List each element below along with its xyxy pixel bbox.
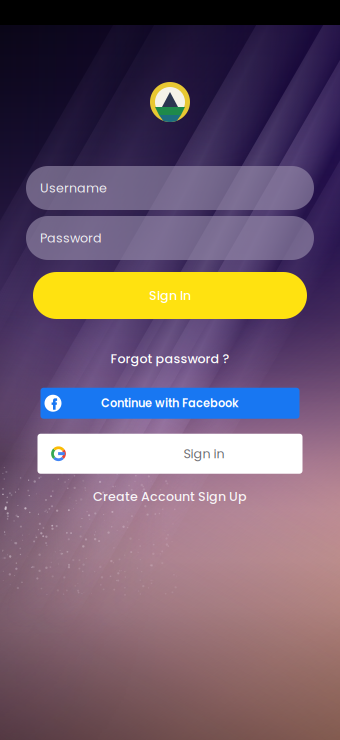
staticText: Continue with Facebook <box>101 395 239 411</box>
staticText: Password <box>40 229 102 247</box>
button[interactable]: Forgot password ? <box>100 346 239 372</box>
button[interactable]: Username <box>26 166 314 210</box>
staticText: Forgot password ? <box>110 350 229 368</box>
staticText: Sign In <box>149 287 191 304</box>
staticText: Sign in <box>183 445 224 463</box>
button[interactable]: Sign in <box>37 434 302 474</box>
button[interactable]: Create Account Sign Up <box>83 484 257 509</box>
staticText: Create Account Sign Up <box>93 488 247 505</box>
button[interactable]: Sign In <box>33 272 307 319</box>
staticText: Username <box>40 179 107 197</box>
button[interactable]: Password <box>26 216 314 260</box>
button[interactable]: Continue with Facebook <box>40 388 299 419</box>
